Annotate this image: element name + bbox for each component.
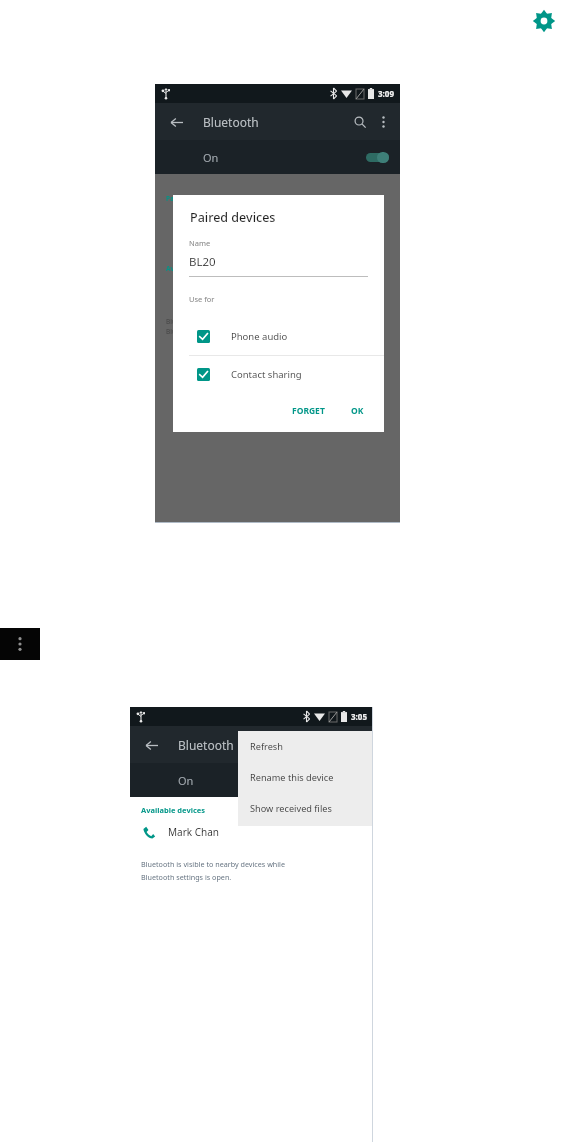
staticText: Name bbox=[189, 238, 211, 248]
staticText: Paired devices bbox=[166, 194, 213, 203]
staticText: Bluetooth bbox=[203, 114, 259, 130]
staticText: Show received files bbox=[250, 802, 332, 815]
staticText: Contact sharing bbox=[231, 368, 302, 381]
button[interactable]: On bbox=[130, 763, 373, 797]
button[interactable]: Back bbox=[164, 110, 188, 134]
staticText: 3:05 bbox=[351, 711, 367, 722]
staticText: Bluetooth is visible to nearby devices w… bbox=[141, 859, 286, 869]
button[interactable]: On bbox=[155, 140, 400, 174]
staticText: Phone audio bbox=[231, 330, 288, 343]
button[interactable]: Refresh bbox=[238, 731, 373, 762]
staticText: Use for bbox=[189, 294, 215, 304]
button[interactable]: Search bbox=[348, 110, 372, 134]
staticText: OK bbox=[351, 405, 364, 417]
staticText: 3:09 bbox=[378, 88, 394, 99]
staticText: Bluetooth bbox=[178, 737, 234, 753]
button[interactable]: More options bbox=[372, 111, 394, 133]
staticText: Available devices bbox=[141, 805, 206, 815]
button[interactable]: Rename this device bbox=[238, 762, 373, 793]
button[interactable]: Contact sharing bbox=[173, 356, 384, 393]
button[interactable]: OK bbox=[343, 399, 372, 423]
staticText: Bluetooth is visible to nearby devices w… bbox=[166, 317, 297, 326]
button[interactable]: Settings bbox=[531, 8, 557, 34]
staticText: FORGET bbox=[292, 405, 325, 417]
staticText: Paired devices bbox=[190, 209, 276, 226]
staticText: BL20 bbox=[189, 254, 216, 270]
staticText: Rename this device bbox=[250, 771, 334, 784]
staticText: Bluetooth settings is open. bbox=[141, 872, 232, 882]
button[interactable]: Show received files bbox=[238, 793, 373, 824]
staticText: On bbox=[178, 773, 194, 788]
staticText: On bbox=[203, 150, 219, 165]
button[interactable]: More options bbox=[0, 628, 40, 660]
button[interactable]: FORGET bbox=[284, 399, 333, 423]
staticText: Available devices bbox=[166, 264, 222, 273]
staticText: Mark Chan bbox=[168, 825, 220, 839]
staticText: Refresh bbox=[250, 740, 283, 753]
button[interactable]: Back bbox=[139, 733, 163, 757]
button[interactable]: Phone audio bbox=[173, 318, 384, 355]
staticText: Bluetooth settings is open. bbox=[166, 327, 248, 336]
